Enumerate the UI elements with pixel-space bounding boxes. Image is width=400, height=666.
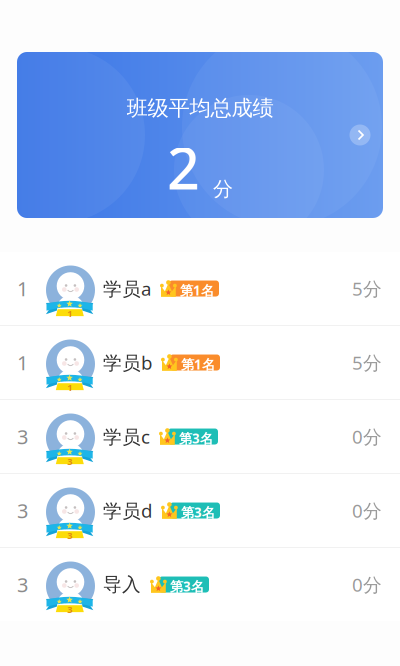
staticText: 学员a [103, 276, 151, 301]
button[interactable]: 3 [0, 400, 400, 473]
staticText: 2 [167, 129, 200, 205]
staticText: 1 [17, 275, 28, 302]
button[interactable]: 3 [0, 548, 400, 621]
staticText: 1 [67, 307, 72, 320]
button[interactable]: 1 [0, 326, 400, 399]
staticText: 学员b [103, 350, 152, 375]
staticText: 第3名 [179, 429, 213, 447]
staticText: 5分 [352, 350, 382, 375]
staticText: 1 [17, 349, 28, 376]
staticText: 第3名 [170, 577, 204, 595]
staticText: 0分 [352, 424, 382, 449]
staticText: 导入 [103, 573, 141, 596]
staticText: 3 [17, 423, 28, 450]
staticText: 1 [67, 381, 72, 394]
staticText: 5分 [352, 276, 382, 301]
staticText: 学员d [103, 498, 152, 523]
staticText: 0分 [352, 572, 382, 597]
button[interactable]: 查看详情 [343, 118, 377, 152]
staticText: 3 [17, 497, 28, 524]
staticText: 分 [213, 177, 233, 201]
staticText: 3 [67, 529, 72, 542]
staticText: 3 [67, 603, 72, 616]
staticText: 0分 [352, 498, 382, 523]
staticText: 3 [67, 455, 72, 468]
button[interactable]: 1 [0, 252, 400, 325]
staticText: 学员c [103, 424, 150, 449]
button[interactable]: 3 [0, 474, 400, 547]
staticText: 班级平均总成绩 [126, 95, 273, 121]
staticText: 第3名 [181, 503, 215, 521]
staticText: 第1名 [181, 355, 215, 373]
staticText: 第1名 [180, 281, 214, 299]
staticText: 3 [17, 571, 28, 598]
